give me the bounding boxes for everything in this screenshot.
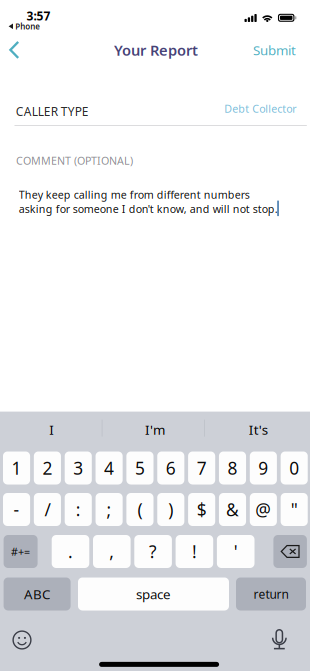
- button[interactable]: :: [65, 493, 92, 526]
- button[interactable]: -: [3, 493, 30, 526]
- button[interactable]: ,: [93, 535, 131, 568]
- staticText: Your Report: [114, 40, 198, 60]
- staticText: space: [136, 585, 171, 603]
- button[interactable]: 6: [157, 451, 184, 484]
- staticText: 4: [104, 456, 114, 479]
- staticText: ABC: [24, 585, 50, 603]
- button[interactable]: 1: [3, 451, 30, 484]
- staticText: I'm: [145, 421, 165, 438]
- staticText: 8: [227, 456, 237, 479]
- button[interactable]: (: [126, 493, 153, 526]
- button[interactable]: Debt Collector: [216, 99, 296, 117]
- staticText: $: [197, 498, 207, 521]
- button[interactable]: .: [52, 535, 89, 568]
- staticText: Submit: [253, 41, 296, 59]
- button[interactable]: #+=: [4, 535, 38, 568]
- staticText: :: [76, 498, 81, 521]
- button[interactable]: space: [78, 577, 229, 610]
- staticText: CALLER TYPE: [16, 103, 89, 119]
- staticText: .: [68, 540, 73, 563]
- button[interactable]: 4: [96, 451, 123, 484]
- button[interactable]: Submit: [244, 33, 304, 67]
- button[interactable]: 0: [281, 451, 308, 484]
- staticText: (: [137, 498, 142, 521]
- staticText: &: [226, 498, 239, 521]
- staticText: 3: [73, 456, 83, 479]
- staticText: 0: [289, 456, 299, 479]
- staticText: 1: [12, 456, 22, 479]
- staticText: ?: [149, 540, 157, 563]
- button[interactable]: &: [219, 493, 246, 526]
- button[interactable]: ?: [134, 535, 172, 568]
- staticText: Debt Collector: [224, 101, 296, 116]
- button[interactable]: ): [157, 493, 184, 526]
- button[interactable]: I'm: [103, 412, 207, 448]
- staticText: 9: [258, 456, 268, 479]
- button[interactable]: ;: [96, 493, 123, 526]
- staticText: They keep calling me from different numb…: [19, 187, 278, 216]
- button[interactable]: return: [236, 577, 306, 610]
- staticText: return: [253, 586, 288, 602]
- button[interactable]: /: [34, 493, 61, 526]
- staticText: ,: [109, 540, 114, 563]
- button[interactable]: 5: [126, 451, 153, 484]
- button[interactable]: 9: [250, 451, 277, 484]
- staticText: COMMENT (OPTIONAL): [16, 153, 133, 168]
- staticText: It's: [249, 421, 268, 438]
- staticText: I: [49, 421, 54, 438]
- button[interactable]: $: [188, 493, 215, 526]
- button[interactable]: I: [0, 412, 103, 448]
- button[interactable]: It's: [207, 412, 310, 448]
- button[interactable]: 8: [219, 451, 246, 484]
- button[interactable]: ": [281, 493, 308, 526]
- button[interactable]: @: [250, 493, 277, 526]
- staticText: 3:57: [26, 8, 50, 24]
- button[interactable]: 3: [65, 451, 92, 484]
- staticText: #+=: [11, 544, 30, 559]
- staticText: ): [168, 498, 173, 521]
- staticText: @: [255, 498, 271, 521]
- staticText: ': [234, 540, 238, 563]
- button[interactable]: ABC: [4, 577, 71, 610]
- staticText: 6: [166, 456, 176, 479]
- button[interactable]: Back: [0, 33, 31, 67]
- staticText: /: [44, 498, 50, 521]
- staticText: 5: [135, 456, 145, 479]
- staticText: -: [14, 498, 20, 521]
- staticText: 2: [42, 456, 52, 479]
- staticText: Phone: [15, 21, 40, 32]
- button[interactable]: 2: [34, 451, 61, 484]
- button[interactable]: !: [176, 535, 213, 568]
- staticText: ;: [107, 498, 112, 521]
- button[interactable]: Delete: [273, 535, 307, 568]
- staticText: 7: [197, 456, 207, 479]
- button[interactable]: ': [217, 535, 254, 568]
- button[interactable]: Dictate: [265, 626, 293, 652]
- button[interactable]: 7: [188, 451, 215, 484]
- staticText: !: [192, 540, 197, 563]
- button[interactable]: Emoji keyboard: [7, 627, 37, 653]
- staticText: ": [291, 498, 298, 521]
